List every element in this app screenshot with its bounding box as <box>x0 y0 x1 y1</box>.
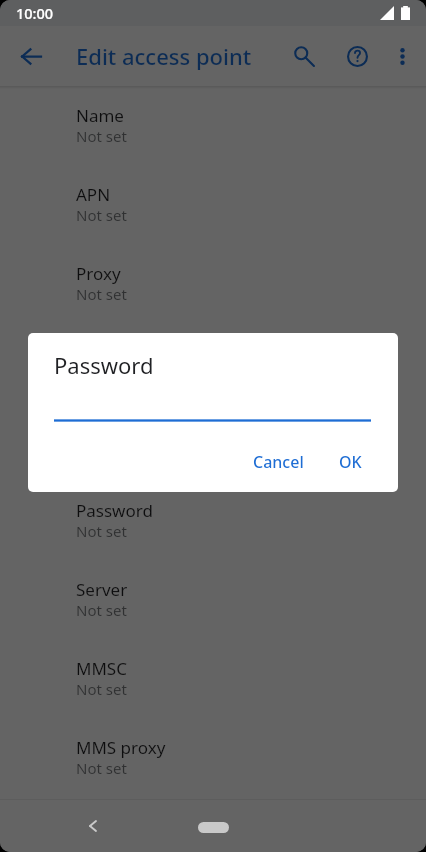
button[interactable]: More options <box>380 34 424 78</box>
button[interactable]: MMSC <box>0 640 426 719</box>
button[interactable]: Password <box>0 482 426 561</box>
button[interactable]: Help <box>335 34 379 78</box>
button[interactable]: Name <box>0 87 426 166</box>
staticText: Username <box>76 420 159 443</box>
staticText: Not set <box>76 205 127 225</box>
button[interactable]: Navigate up <box>9 34 53 78</box>
staticText: Cancel <box>253 451 304 473</box>
button[interactable]: Home <box>198 822 229 833</box>
staticText: MMS proxy <box>76 736 166 759</box>
staticText: Password <box>76 499 153 522</box>
staticText: Not set <box>76 521 127 541</box>
staticText: APN <box>76 183 111 206</box>
staticText: Not set <box>76 126 127 146</box>
button[interactable]: Proxy <box>0 245 426 324</box>
staticText: Server <box>76 578 128 601</box>
staticText: Proxy <box>76 262 121 285</box>
button[interactable]: MMS proxy <box>0 719 426 798</box>
button[interactable]: OK <box>331 445 370 479</box>
button[interactable]: Back <box>78 811 108 841</box>
button[interactable]: APN <box>0 166 426 245</box>
staticText: MMSC <box>76 657 127 680</box>
button[interactable]: Cancel <box>245 445 312 479</box>
button[interactable]: Server <box>0 561 426 640</box>
staticText: Port <box>76 341 110 364</box>
button[interactable]: Port <box>0 324 426 403</box>
button[interactable]: Search <box>282 34 326 78</box>
staticText: Name <box>76 104 124 127</box>
staticText: Not set <box>76 363 127 383</box>
staticText: Not set <box>76 758 127 778</box>
staticText: OK <box>339 451 362 473</box>
button[interactable]: Username <box>0 403 426 482</box>
staticText: Password <box>54 350 154 380</box>
staticText: Edit access point <box>76 41 252 71</box>
staticText: Not set <box>76 284 127 304</box>
staticText: Not set <box>76 600 127 620</box>
staticText: Not set <box>76 679 127 699</box>
staticText: 10:00 <box>16 3 54 23</box>
